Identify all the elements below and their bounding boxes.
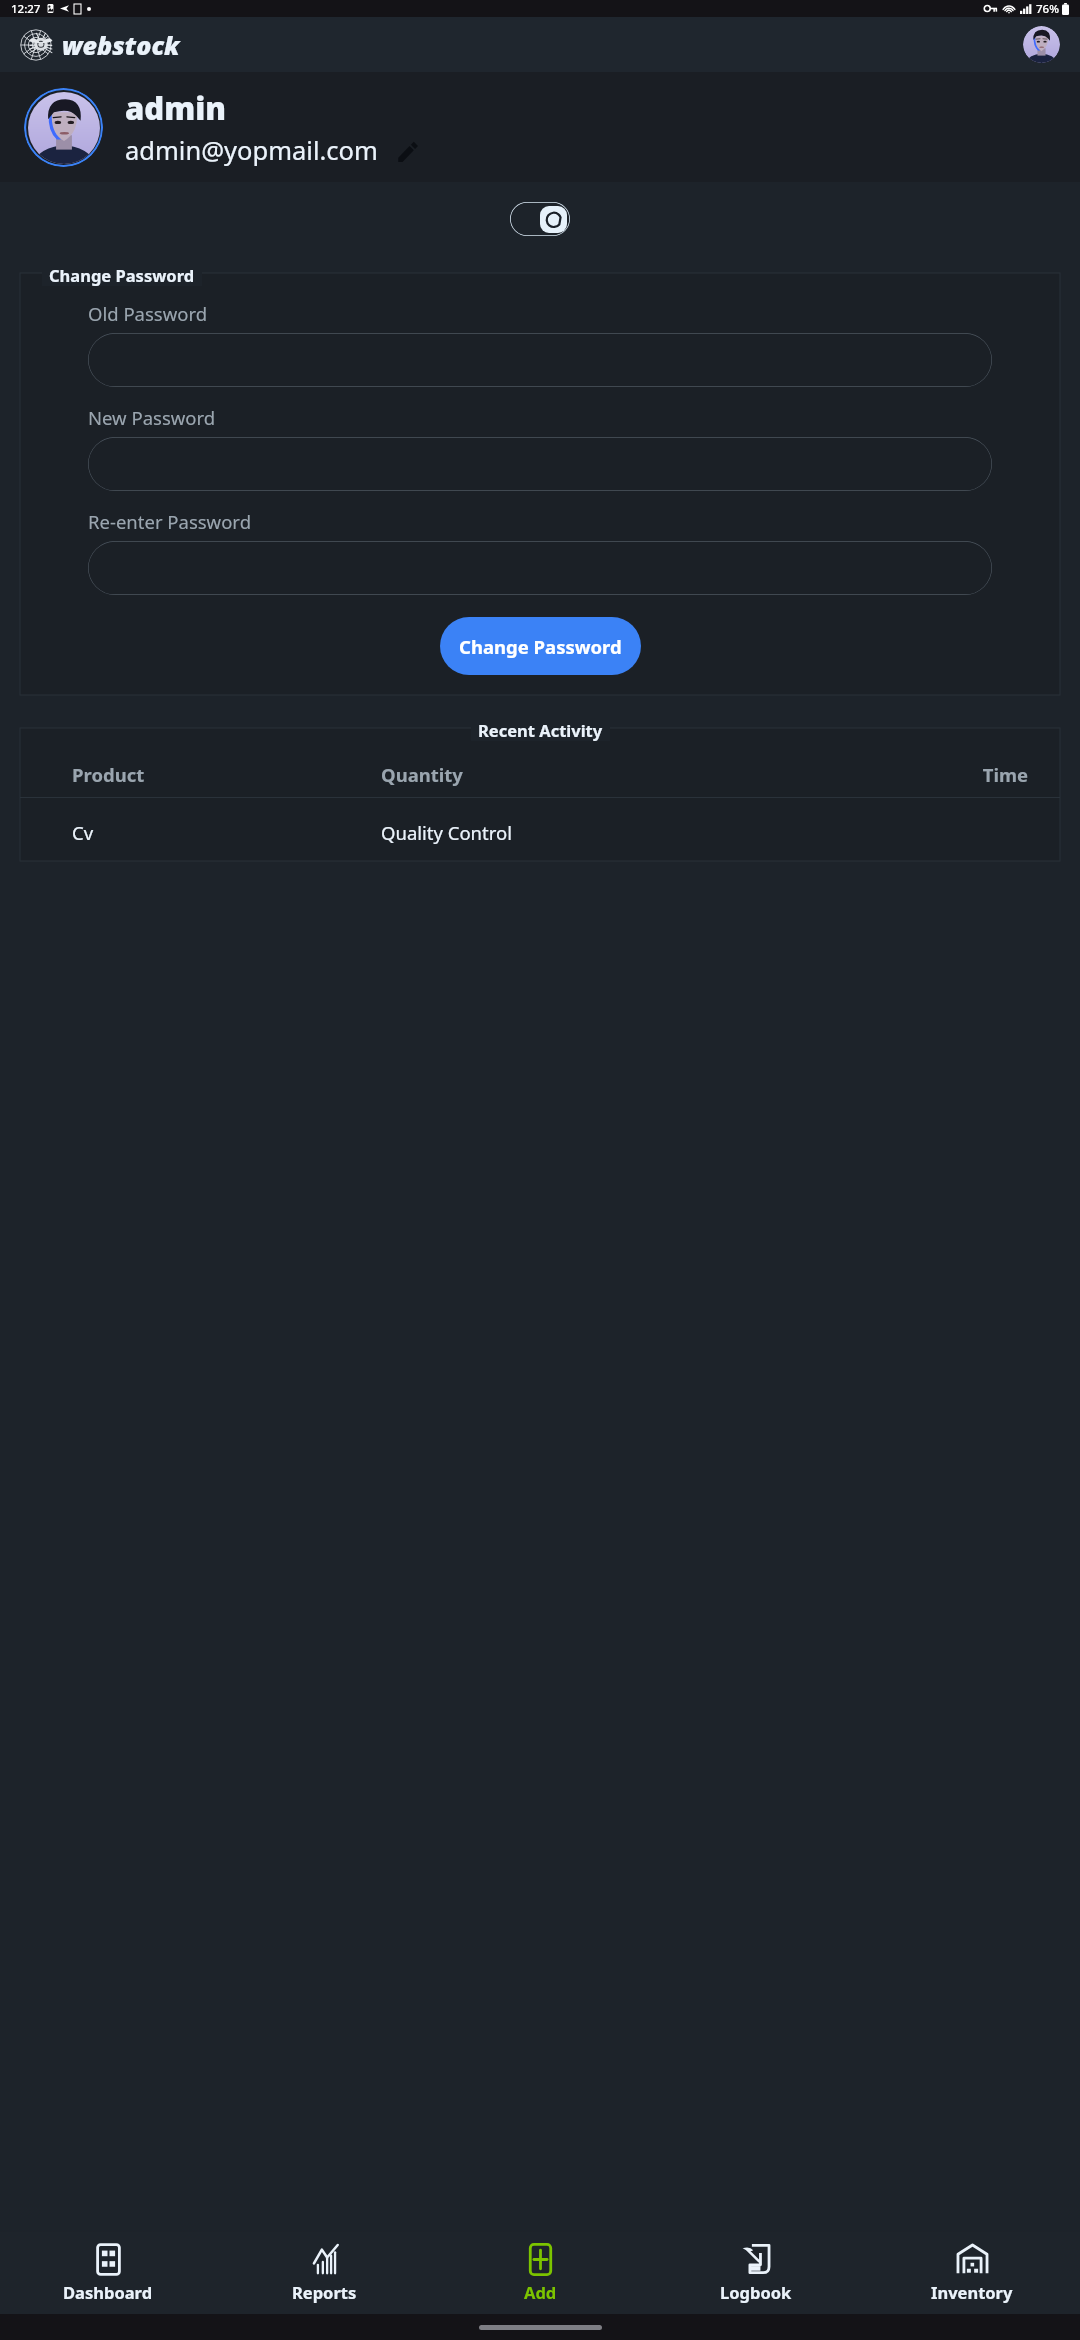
staticText: Change Password bbox=[459, 634, 622, 659]
button[interactable]: Reports bbox=[216, 2232, 432, 2314]
button[interactable]: Edit profile bbox=[394, 138, 420, 164]
staticText: admin bbox=[125, 87, 227, 129]
staticText: 76% bbox=[1036, 1, 1059, 17]
button[interactable]: Dashboard bbox=[0, 2232, 216, 2314]
staticText: Product bbox=[72, 762, 381, 787]
button[interactable]: New Password bbox=[88, 437, 992, 491]
button[interactable]: Re-enter Password bbox=[88, 541, 992, 595]
button[interactable]: Inventory bbox=[864, 2232, 1080, 2314]
staticText: Re-enter Password bbox=[88, 509, 252, 534]
staticText: Inventory bbox=[931, 2281, 1013, 2303]
staticText: Time bbox=[763, 762, 1028, 787]
button[interactable]: webstock bbox=[20, 26, 180, 64]
staticText: Quantity bbox=[381, 762, 763, 787]
staticText: Recent Activity bbox=[478, 719, 603, 741]
staticText: Old Password bbox=[88, 301, 208, 326]
button[interactable]: Old Password bbox=[88, 333, 992, 387]
staticText: Change Password bbox=[49, 264, 195, 286]
button[interactable]: Add bbox=[432, 2232, 648, 2314]
staticText: admin@yopmail.com bbox=[125, 133, 378, 168]
staticText: Quality Control bbox=[381, 820, 763, 845]
button[interactable]: Change Password bbox=[440, 617, 641, 675]
staticText: Logbook bbox=[720, 2281, 792, 2303]
button[interactable]: Toggle dark mode bbox=[510, 202, 570, 236]
staticText: Dashboard bbox=[63, 2281, 153, 2303]
staticText: Cv bbox=[72, 820, 381, 845]
button[interactable]: User avatar bbox=[24, 88, 103, 167]
staticText: Reports bbox=[292, 2281, 357, 2303]
staticText: Add bbox=[524, 2281, 557, 2303]
staticText: webstock bbox=[62, 28, 180, 62]
staticText: 12:27 bbox=[11, 1, 41, 17]
staticText: New Password bbox=[88, 405, 216, 430]
button[interactable]: Logbook bbox=[648, 2232, 864, 2314]
button[interactable]: Profile bbox=[1023, 26, 1060, 63]
